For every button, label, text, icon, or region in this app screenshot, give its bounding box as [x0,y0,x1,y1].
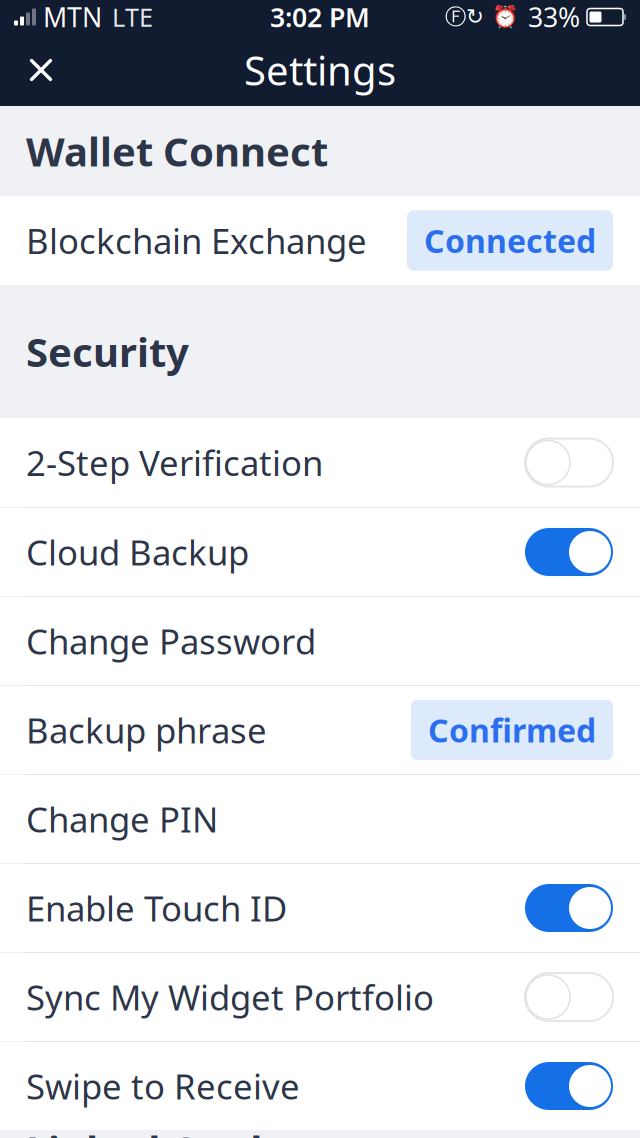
staticText: Swipe to Receive [26,1063,300,1109]
staticText: Backup phrase [26,707,267,753]
button[interactable]: Backup phrase [0,686,640,774]
staticText: Sync My Widget Portfolio [26,974,434,1020]
button[interactable]: Cloud Backup [0,508,640,596]
staticText: Blockchain Exchange [26,217,367,263]
button[interactable]: Change Password [0,597,640,685]
staticText: Wallet Connect [26,124,328,177]
button[interactable]: Change PIN [0,775,640,863]
staticText: 33% [528,0,580,35]
staticText: ⏰ [492,5,519,29]
button[interactable]: Sync My Widget Portfolio [0,953,640,1041]
staticText: 2-Step Verification [26,439,323,485]
staticText: MTN [43,0,102,35]
button[interactable]: Blockchain Exchange [0,196,640,285]
staticText: Cloud Backup [26,529,249,575]
staticText: Linked Cards [26,1123,282,1138]
staticText: LTE [112,0,153,34]
staticText: Security [26,325,189,378]
staticText: Settings [244,43,396,96]
staticText: 3:02 PM [270,0,370,35]
button[interactable]: Enable Touch ID [0,864,640,952]
staticText: Enable Touch ID [26,885,287,931]
staticText: Change PIN [26,796,218,842]
staticText: Confirmed [428,709,596,751]
staticText: Connected [424,219,596,262]
button[interactable]: 2-Step Verification [0,418,640,507]
staticText: Ⓕ↻ [445,4,484,30]
button[interactable]: Close [13,42,69,98]
staticText: Change Password [26,618,316,664]
button[interactable]: Swipe to Receive [0,1042,640,1130]
